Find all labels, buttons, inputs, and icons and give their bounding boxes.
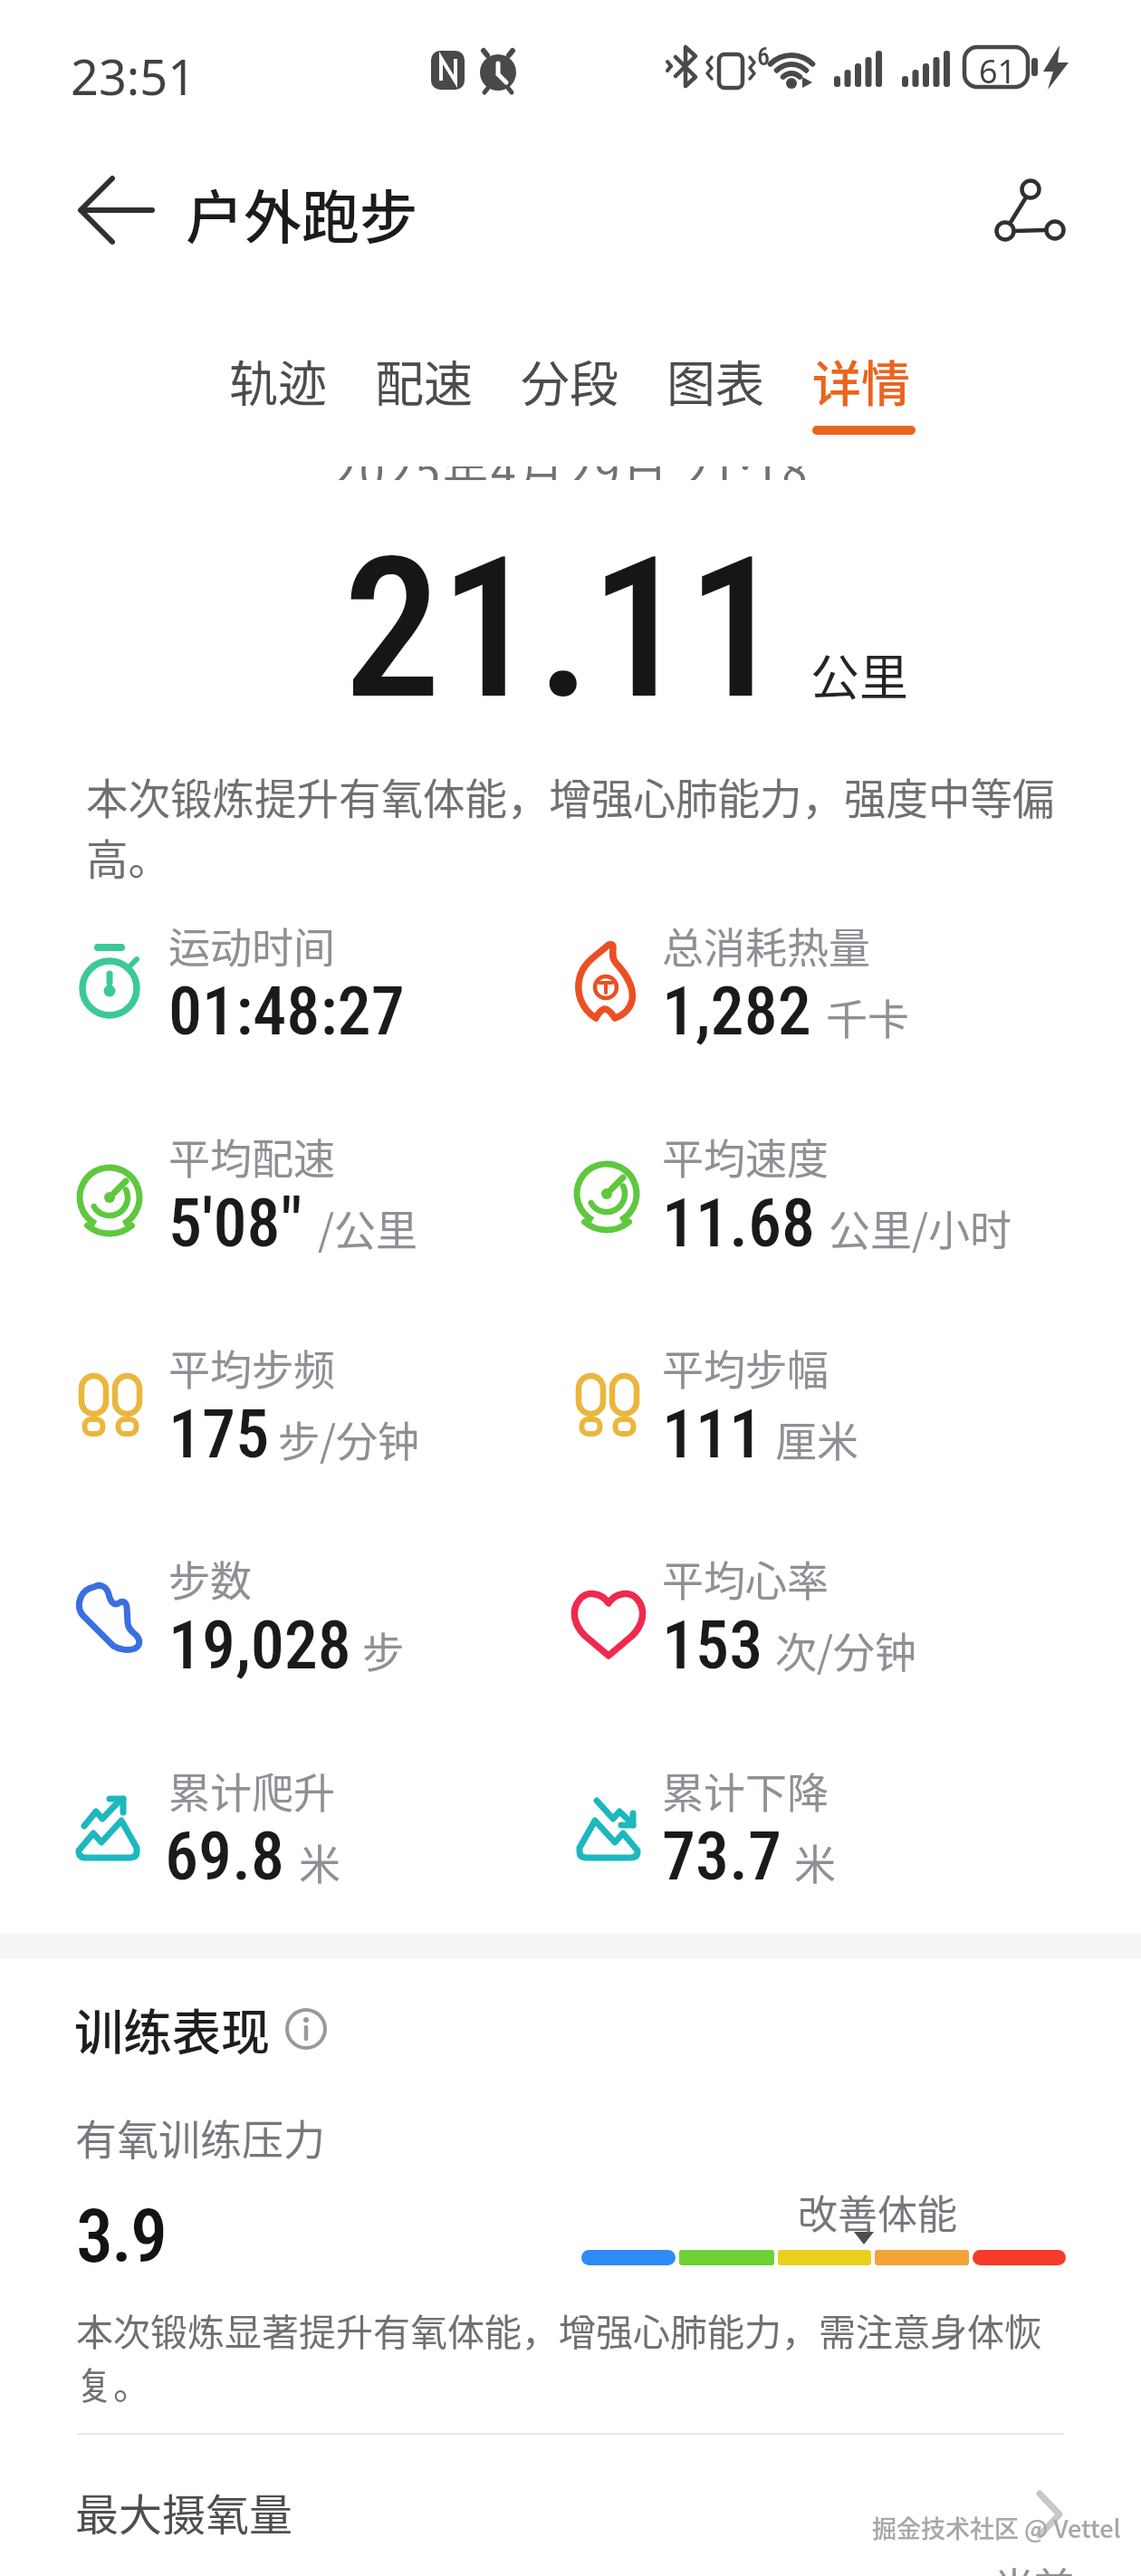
staticText: 23:51	[71, 43, 197, 110]
staticText: 步	[362, 1620, 404, 1680]
staticText: 本次锻炼显著提升有氧体能，增强心肺能力，需注意身体恢复。	[76, 2302, 1054, 2409]
button[interactable]	[357, 349, 491, 439]
staticText: 平均配速	[168, 1126, 335, 1187]
staticText: 1,282	[662, 972, 811, 1051]
staticText: 公里	[810, 639, 908, 709]
staticText: 当前	[994, 2556, 1074, 2576]
staticText: 19,028	[168, 1606, 351, 1685]
staticText: 改善体能	[798, 2183, 957, 2241]
staticText: /公里	[318, 1197, 418, 1258]
staticText: 米	[794, 1831, 836, 1892]
staticText: 本次锻炼提升有氧体能，增强心肺能力，强度中等偏高。	[86, 765, 1069, 887]
staticText: 轨迹	[229, 345, 327, 416]
button[interactable]	[211, 349, 345, 439]
staticText: 户外跑步	[186, 171, 417, 255]
staticText: 详情	[812, 345, 910, 416]
staticText: 01:48:27	[168, 972, 405, 1051]
staticText: 步数	[168, 1548, 252, 1609]
button[interactable]	[794, 349, 928, 439]
button[interactable]	[54, 2455, 1087, 2563]
button[interactable]	[54, 163, 163, 258]
staticText: 次/分钟	[775, 1620, 917, 1680]
staticText: 73.7	[662, 1817, 781, 1896]
button[interactable]	[503, 349, 637, 439]
staticText: 掘金技术社区 @ Vettel	[872, 2510, 1121, 2545]
staticText: 厘米	[775, 1408, 858, 1469]
staticText: 米	[299, 1831, 340, 1892]
staticText: 累计爬升	[168, 1760, 335, 1821]
button[interactable]	[648, 349, 782, 439]
staticText: 175	[168, 1395, 270, 1474]
staticText: 5'08"	[168, 1184, 302, 1263]
staticText: 6	[757, 42, 771, 72]
staticText: 平均心率	[662, 1548, 829, 1609]
staticText: 配速	[375, 345, 473, 416]
button[interactable]	[978, 159, 1087, 254]
staticText: 有氧训练压力	[75, 2107, 325, 2167]
staticText: 总消耗热量	[662, 915, 870, 976]
staticText: 最大摄氧量	[75, 2480, 293, 2543]
staticText: 平均速度	[662, 1126, 829, 1187]
staticText: 分段	[521, 345, 618, 416]
staticText: 运动时间	[168, 915, 335, 976]
staticText: 累计下降	[662, 1760, 829, 1821]
staticText: 平均步频	[168, 1337, 335, 1398]
staticText: 21.11	[343, 515, 784, 744]
staticText: 61	[979, 49, 1017, 93]
staticText: 千卡	[826, 986, 909, 1047]
staticText: 平均步幅	[662, 1337, 829, 1398]
staticText: 111	[662, 1395, 763, 1474]
staticText: 69.8	[165, 1817, 284, 1896]
staticText: 2025年4月29日 21:18	[331, 466, 810, 480]
staticText: 153	[662, 1606, 763, 1685]
staticText: 公里/小时	[829, 1197, 1012, 1258]
staticText: 3.9	[76, 2193, 167, 2280]
button[interactable]	[281, 2004, 335, 2058]
staticText: 图表	[666, 345, 764, 416]
staticText: 步/分钟	[278, 1408, 420, 1469]
staticText: 11.68	[662, 1184, 816, 1263]
staticText: 训练表现	[74, 1994, 270, 2064]
